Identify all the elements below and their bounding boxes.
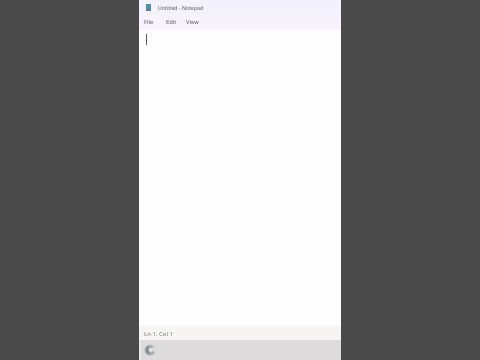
button[interactable]: Browser xyxy=(144,344,156,356)
staticText: Ln 1, Col 1 xyxy=(144,330,173,338)
staticText: File xyxy=(144,18,154,26)
button[interactable]: Untitled - Notepad xyxy=(139,0,341,14)
button[interactable]: File xyxy=(141,16,157,28)
staticText: Untitled - Notepad xyxy=(158,4,204,11)
button[interactable]: Edit xyxy=(163,16,180,28)
staticText: Edit xyxy=(166,18,177,26)
staticText: View xyxy=(186,18,199,26)
button[interactable]: View xyxy=(183,16,202,28)
